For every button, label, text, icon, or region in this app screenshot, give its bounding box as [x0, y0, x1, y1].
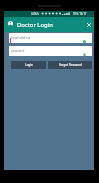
staticText: Doctor Login: [17, 21, 53, 29]
staticText: 4.8K/s: [31, 12, 39, 16]
staticText: 91% 13:17: [73, 12, 87, 16]
staticText: password: [11, 49, 25, 53]
button[interactable]: Forgot Password: [48, 61, 92, 69]
staticText: Login: [25, 63, 33, 67]
staticText: Forgot Password: [59, 63, 82, 67]
staticText: Email address: [11, 36, 31, 40]
button[interactable]: Email address: [9, 33, 92, 43]
button[interactable]: Close: [86, 22, 92, 28]
button[interactable]: password: [9, 46, 92, 56]
button[interactable]: Login: [11, 61, 46, 69]
